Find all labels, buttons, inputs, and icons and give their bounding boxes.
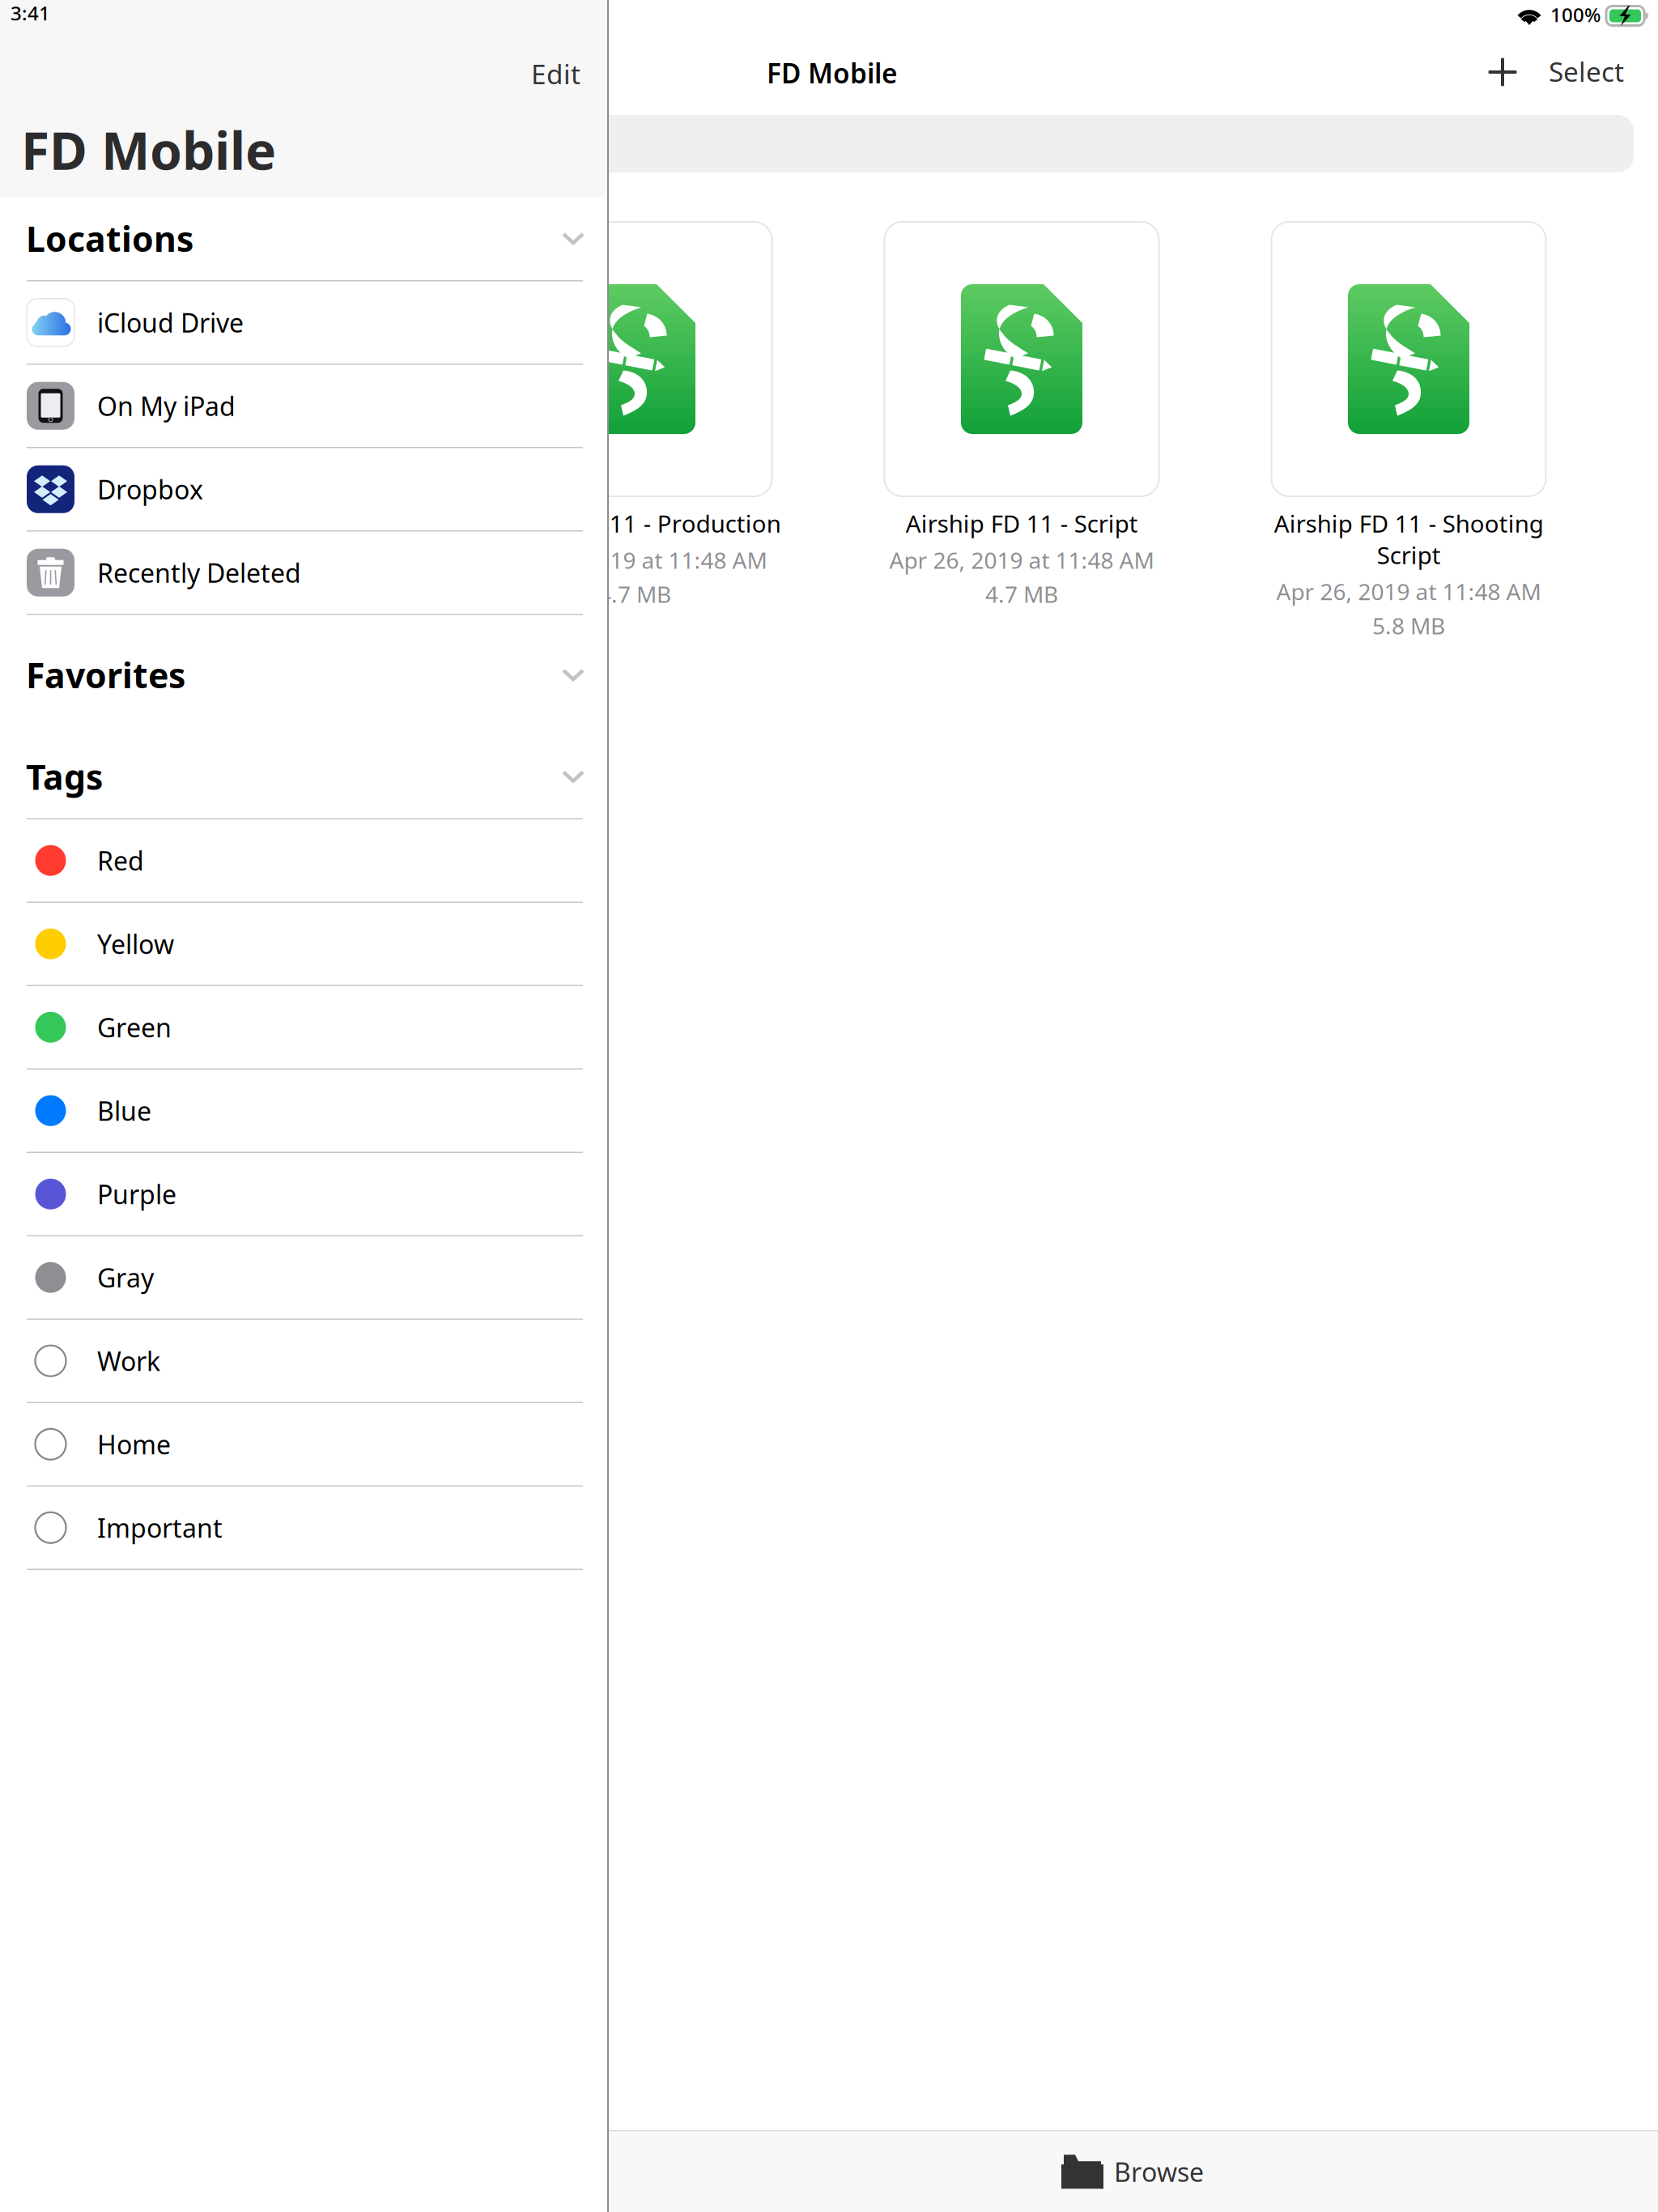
staticText: Apr 26, 2019 at 11:48 AM <box>1276 576 1541 607</box>
staticText: Airship FD 11 - Shooting Script <box>1274 508 1543 571</box>
staticText: 4.7 MB <box>985 579 1058 609</box>
staticText: 5.8 MB <box>1372 611 1445 641</box>
staticText: Blue <box>97 1093 151 1128</box>
staticText: 4.7 MB <box>598 579 671 609</box>
button[interactable]: Yellow <box>0 903 607 985</box>
staticText: Select <box>1549 53 1624 89</box>
staticText: Purple <box>97 1177 176 1211</box>
staticText: Airship FD 11 - Script <box>906 508 1138 539</box>
staticText: Yellow <box>97 927 174 961</box>
button[interactable]: Airship FD 11 - Shooting Script <box>1255 222 1562 641</box>
button[interactable]: Favorites <box>0 615 607 735</box>
staticText: 100% <box>1550 2 1601 27</box>
staticText: 3:41 <box>11 0 50 26</box>
staticText: On My iPad <box>97 389 236 423</box>
button[interactable]: Red <box>0 819 607 902</box>
button[interactable]: Blue <box>0 1070 607 1152</box>
button[interactable]: Gray <box>0 1236 607 1319</box>
button[interactable]: On My iPad <box>0 365 607 447</box>
button[interactable]: Select <box>1536 45 1637 97</box>
button[interactable]: Airship FD 11 - Script <box>868 222 1175 641</box>
button[interactable]: Edit <box>518 49 593 99</box>
button[interactable]: Dropbox <box>0 448 607 530</box>
staticText: Edit <box>531 56 580 92</box>
button[interactable]: Recently Deleted <box>0 532 607 614</box>
staticText: Airship FD 11 - Production <box>489 508 781 539</box>
button[interactable]: Browse <box>607 2131 1658 2212</box>
staticText: Work <box>97 1344 160 1378</box>
staticText: FD Mobile <box>21 115 276 184</box>
staticText: Red <box>97 843 144 878</box>
button[interactable]: Home <box>0 1403 607 1485</box>
button[interactable]: Work <box>0 1320 607 1402</box>
staticText: Important <box>97 1510 223 1545</box>
staticText: iCloud Drive <box>97 305 244 340</box>
staticText: FD Mobile <box>767 55 898 91</box>
staticText: Apr 26, 2019 at 11:48 AM <box>502 545 767 575</box>
staticText: Locations <box>26 216 193 261</box>
staticText: Home <box>97 1427 171 1461</box>
button[interactable]: Airship FD 11 - Production <box>481 222 789 641</box>
staticText: Tags <box>26 754 103 799</box>
staticText: Dropbox <box>97 472 203 506</box>
button[interactable]: Important <box>0 1487 607 1569</box>
button[interactable]: Locations <box>0 197 607 280</box>
staticText: Recently Deleted <box>97 555 301 590</box>
button[interactable]: New Folder or Document <box>1488 57 1517 87</box>
staticText: Favorites <box>26 652 185 698</box>
button[interactable]: Purple <box>0 1153 607 1235</box>
staticText: Gray <box>97 1260 154 1295</box>
button[interactable]: Green <box>0 986 607 1068</box>
button[interactable]: Tags <box>0 735 607 818</box>
button[interactable]: iCloud Drive <box>0 281 607 364</box>
staticText: Green <box>97 1010 172 1044</box>
staticText: Apr 26, 2019 at 11:48 AM <box>889 545 1154 575</box>
staticText: Browse <box>1114 2155 1204 2189</box>
